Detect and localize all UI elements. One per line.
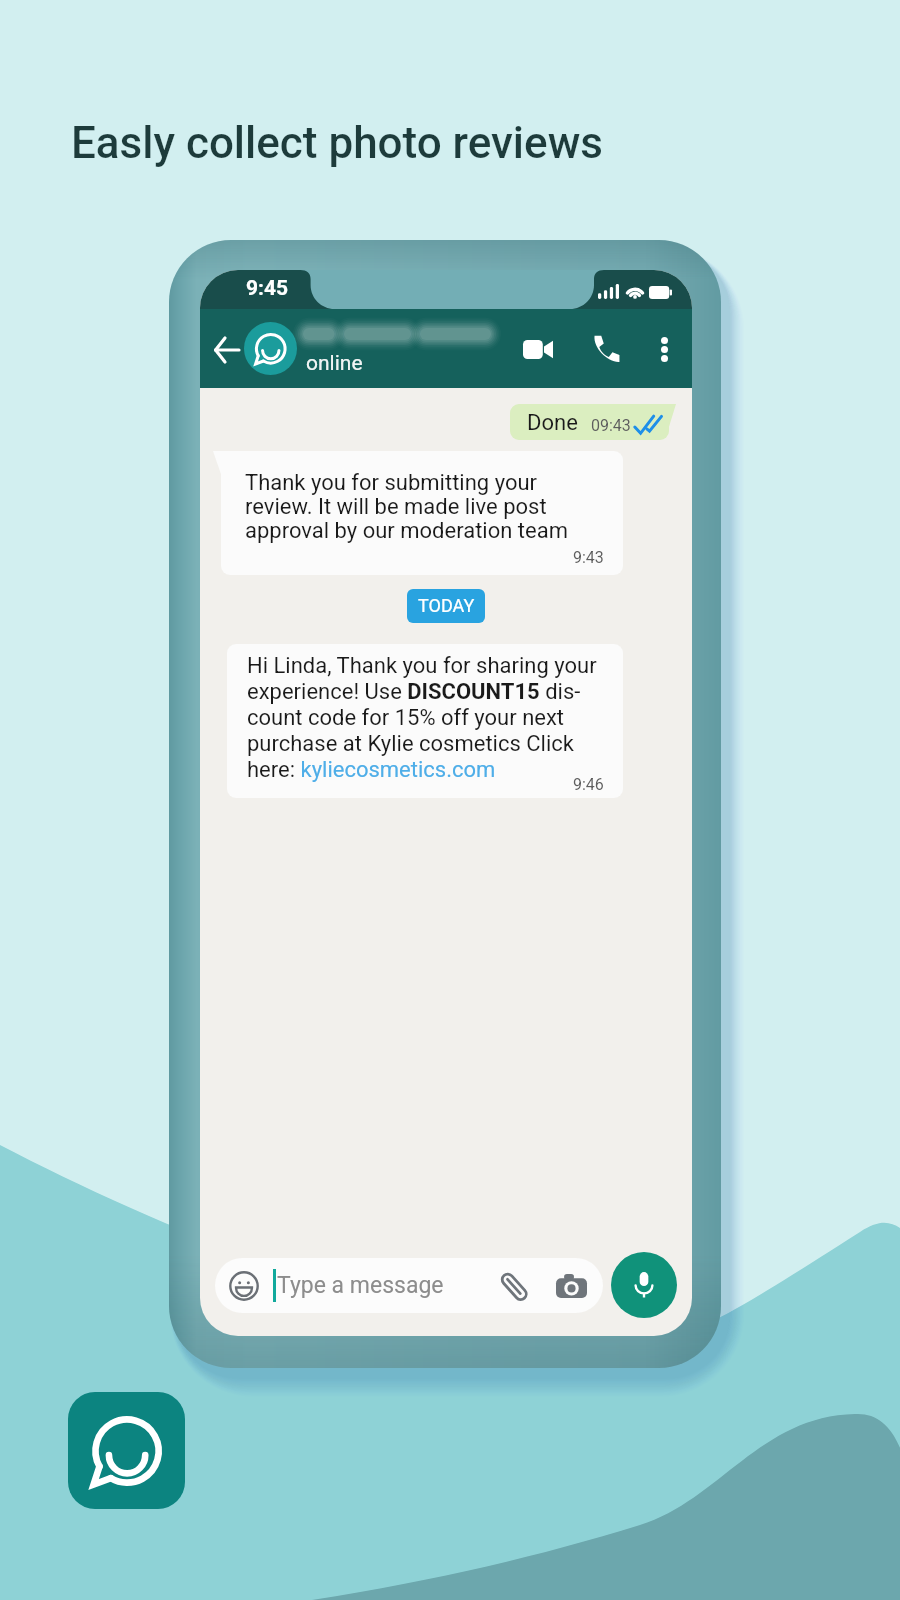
staticText: online [306,351,363,376]
staticText: 9:46 [573,775,604,794]
staticText: Type a message [277,1272,444,1299]
staticText: 9:43 [573,548,604,567]
staticText: Done [527,410,578,436]
staticText: Hi Linda, Thank you for sharing your exp… [247,653,597,783]
staticText: Easly collect photo reviews [71,117,603,169]
button[interactable]: Type a message [215,1258,603,1313]
staticText: 9:45 [246,276,289,301]
button[interactable]: Call [582,330,630,368]
staticText: 09:43 [591,416,631,435]
staticText: TODAY [418,595,475,616]
button[interactable]: More options [643,330,686,368]
button[interactable]: Back [202,325,251,374]
button[interactable]: Voice message [611,1252,677,1318]
button[interactable]: Video call [514,330,562,368]
button[interactable]: WhatsApp [68,1392,185,1509]
button[interactable]: TODAY [407,589,485,623]
staticText: Thank you for submitting your review. It… [245,470,568,543]
